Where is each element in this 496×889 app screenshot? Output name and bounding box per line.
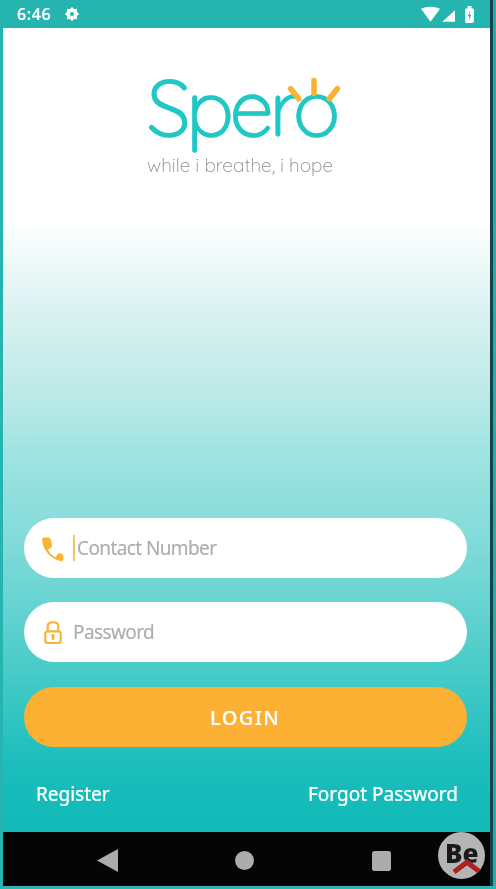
button[interactable]: Home [222,838,267,883]
button[interactable]: Password [24,602,467,662]
button[interactable]: LOGIN [24,687,467,747]
staticText: 6:46 [17,3,52,25]
staticText: Be [445,835,479,870]
staticText: LOGIN [210,704,281,731]
staticText: Password [73,619,155,645]
staticText: Contact Number [77,535,217,561]
button[interactable]: Contact Number [24,518,467,578]
button[interactable]: Recent apps [359,838,404,883]
staticText: Spero [147,57,337,156]
button[interactable]: Back [85,838,130,883]
staticText: Spero [147,57,337,156]
button[interactable]: Forgot Password [308,781,458,807]
button[interactable]: Register [36,781,110,807]
staticText: while i breathe, i hope [147,153,333,177]
